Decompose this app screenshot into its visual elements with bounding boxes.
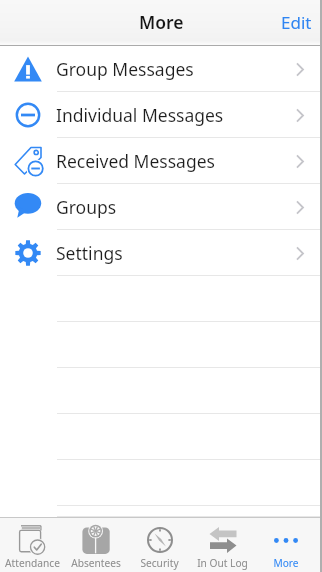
button[interactable]: Individual Messages: [0, 92, 322, 138]
button[interactable]: Security: [128, 518, 191, 572]
button[interactable]: Absentees: [64, 518, 128, 572]
button[interactable]: Settings: [0, 230, 322, 276]
staticText: Edit: [281, 11, 312, 34]
staticText: In Out Log: [197, 556, 248, 570]
staticText: Individual Messages: [56, 103, 224, 127]
staticText: Groups: [56, 195, 117, 219]
button[interactable]: Attendance: [0, 518, 64, 572]
button[interactable]: More: [254, 518, 317, 572]
staticText: Received Messages: [56, 149, 215, 173]
staticText: Group Messages: [56, 57, 194, 81]
button[interactable]: Groups: [0, 184, 322, 230]
staticText: More: [139, 10, 184, 34]
staticText: More: [273, 556, 299, 570]
staticText: Security: [140, 556, 179, 570]
button[interactable]: Edit: [271, 3, 322, 42]
staticText: Settings: [56, 241, 123, 265]
staticText: Absentees: [71, 556, 121, 570]
button[interactable]: Received Messages: [0, 138, 322, 184]
staticText: Attendance: [5, 556, 60, 570]
button[interactable]: Group Messages: [0, 46, 322, 92]
button[interactable]: In Out Log: [191, 518, 254, 572]
